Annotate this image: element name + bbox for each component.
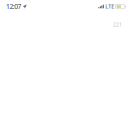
staticText: 221 bbox=[113, 21, 122, 28]
staticText: 12:07 bbox=[6, 2, 22, 11]
staticText: LTE bbox=[105, 3, 114, 10]
button[interactable]: 221 bbox=[113, 21, 122, 28]
